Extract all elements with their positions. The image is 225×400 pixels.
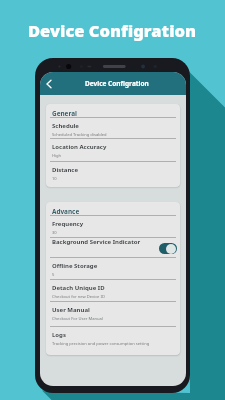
button[interactable]: Schedule <box>46 118 180 139</box>
staticText: Checkout for new Device ID <box>52 294 105 300</box>
staticText: Schedule <box>52 122 79 130</box>
staticText: Device Configration <box>28 19 197 41</box>
staticText: Device Configration <box>85 79 149 88</box>
staticText: Location Accuracy <box>52 143 107 151</box>
staticText: Offline Storage <box>52 262 98 270</box>
staticText: 10 <box>52 176 57 182</box>
staticText: User Manual <box>52 306 90 314</box>
button[interactable]: Background Service Indicator <box>46 238 180 258</box>
staticText: High <box>52 153 62 159</box>
button[interactable]: Location Accuracy <box>46 139 180 162</box>
button[interactable]: Offline Storage <box>46 258 180 280</box>
staticText: 30 <box>52 230 57 236</box>
staticText: Frequency <box>52 220 84 228</box>
staticText: 5 <box>52 272 55 278</box>
button[interactable]: Background Service Indicator toggle <box>159 243 177 254</box>
button[interactable]: Back <box>41 76 57 92</box>
button[interactable]: Frequency <box>46 216 180 238</box>
staticText: General <box>52 109 77 118</box>
staticText: Checkout For User Manual <box>52 316 103 322</box>
staticText: Logs <box>52 331 66 339</box>
button[interactable]: User Manual <box>46 302 180 327</box>
staticText: Background Service Indicator <box>52 238 141 246</box>
staticText: Tracking precision and power consumption… <box>52 341 150 347</box>
button[interactable]: Detach Unique ID <box>46 280 180 302</box>
staticText: Detach Unique ID <box>52 284 105 292</box>
staticText: Advance <box>52 207 80 216</box>
button[interactable]: Logs <box>46 327 180 355</box>
button[interactable]: Distance <box>46 162 180 187</box>
staticText: Distance <box>52 166 78 174</box>
staticText: Scheduled Tracking disabled <box>52 132 107 138</box>
